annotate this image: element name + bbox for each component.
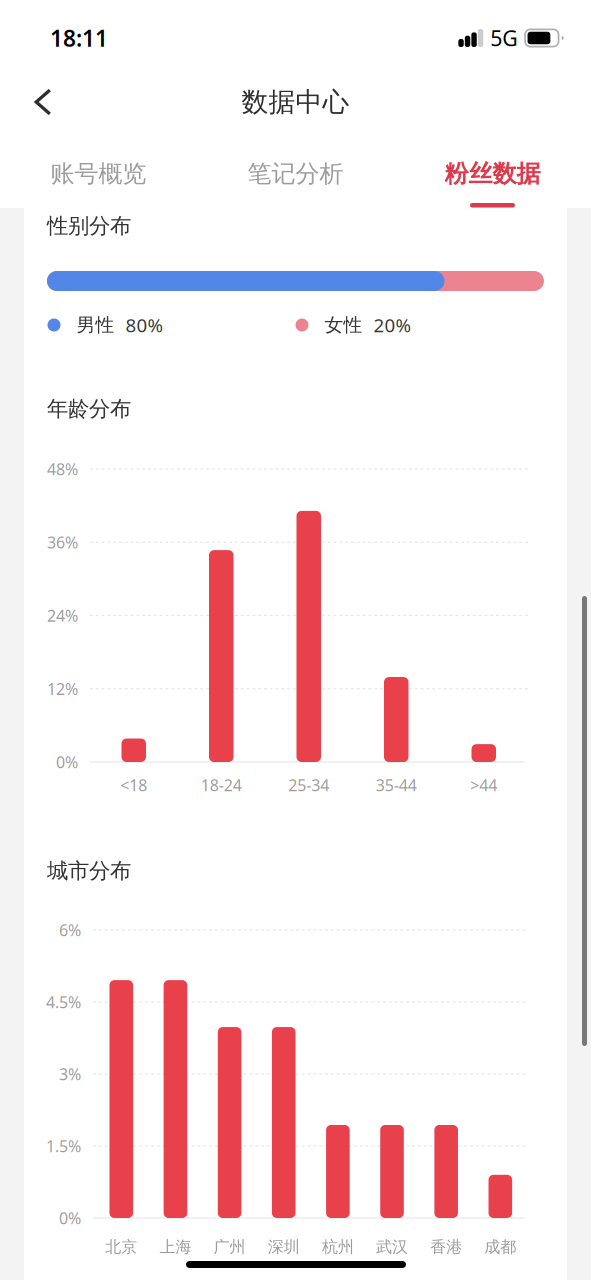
- staticText: 粉丝数据: [444, 159, 540, 188]
- staticText: 12%: [47, 678, 78, 699]
- staticText: 广州: [214, 1237, 246, 1257]
- staticText: 5G: [490, 24, 518, 52]
- staticText: 4.5%: [46, 991, 81, 1013]
- staticText: 0%: [59, 1207, 81, 1229]
- button[interactable]: 笔记分析: [197, 132, 394, 208]
- staticText: 女性: [324, 313, 362, 336]
- staticText: 数据中心: [241, 86, 349, 118]
- button[interactable]: 账号概览: [0, 132, 197, 208]
- staticText: 杭州: [322, 1237, 354, 1257]
- staticText: 25-34: [288, 774, 329, 796]
- staticText: 武汉: [376, 1237, 408, 1257]
- staticText: 笔记分析: [247, 159, 343, 188]
- staticText: 男性: [76, 313, 114, 336]
- staticText: 24%: [47, 605, 78, 626]
- staticText: 18-24: [201, 774, 242, 796]
- button[interactable]: 返回: [17, 76, 69, 128]
- staticText: 0%: [56, 751, 78, 773]
- staticText: >44: [470, 774, 497, 796]
- staticText: 6%: [59, 919, 81, 941]
- staticText: 上海: [159, 1237, 191, 1257]
- staticText: 1.5%: [46, 1135, 81, 1157]
- staticText: 性别分布: [47, 213, 131, 239]
- staticText: 20%: [373, 313, 411, 337]
- staticText: 36%: [47, 532, 78, 553]
- staticText: 成都: [484, 1237, 516, 1257]
- staticText: 35-44: [376, 774, 417, 796]
- staticText: 3%: [59, 1063, 81, 1085]
- staticText: 18:11: [50, 23, 108, 53]
- staticText: 48%: [47, 458, 78, 480]
- button[interactable]: 粉丝数据: [394, 132, 591, 208]
- staticText: 账号概览: [50, 159, 146, 188]
- staticText: 深圳: [268, 1237, 300, 1257]
- staticText: 城市分布: [47, 858, 131, 884]
- staticText: 香港: [430, 1237, 462, 1257]
- staticText: 年龄分布: [47, 396, 131, 422]
- staticText: 80%: [125, 313, 163, 337]
- staticText: <18: [120, 774, 147, 796]
- staticText: 北京: [105, 1237, 137, 1257]
